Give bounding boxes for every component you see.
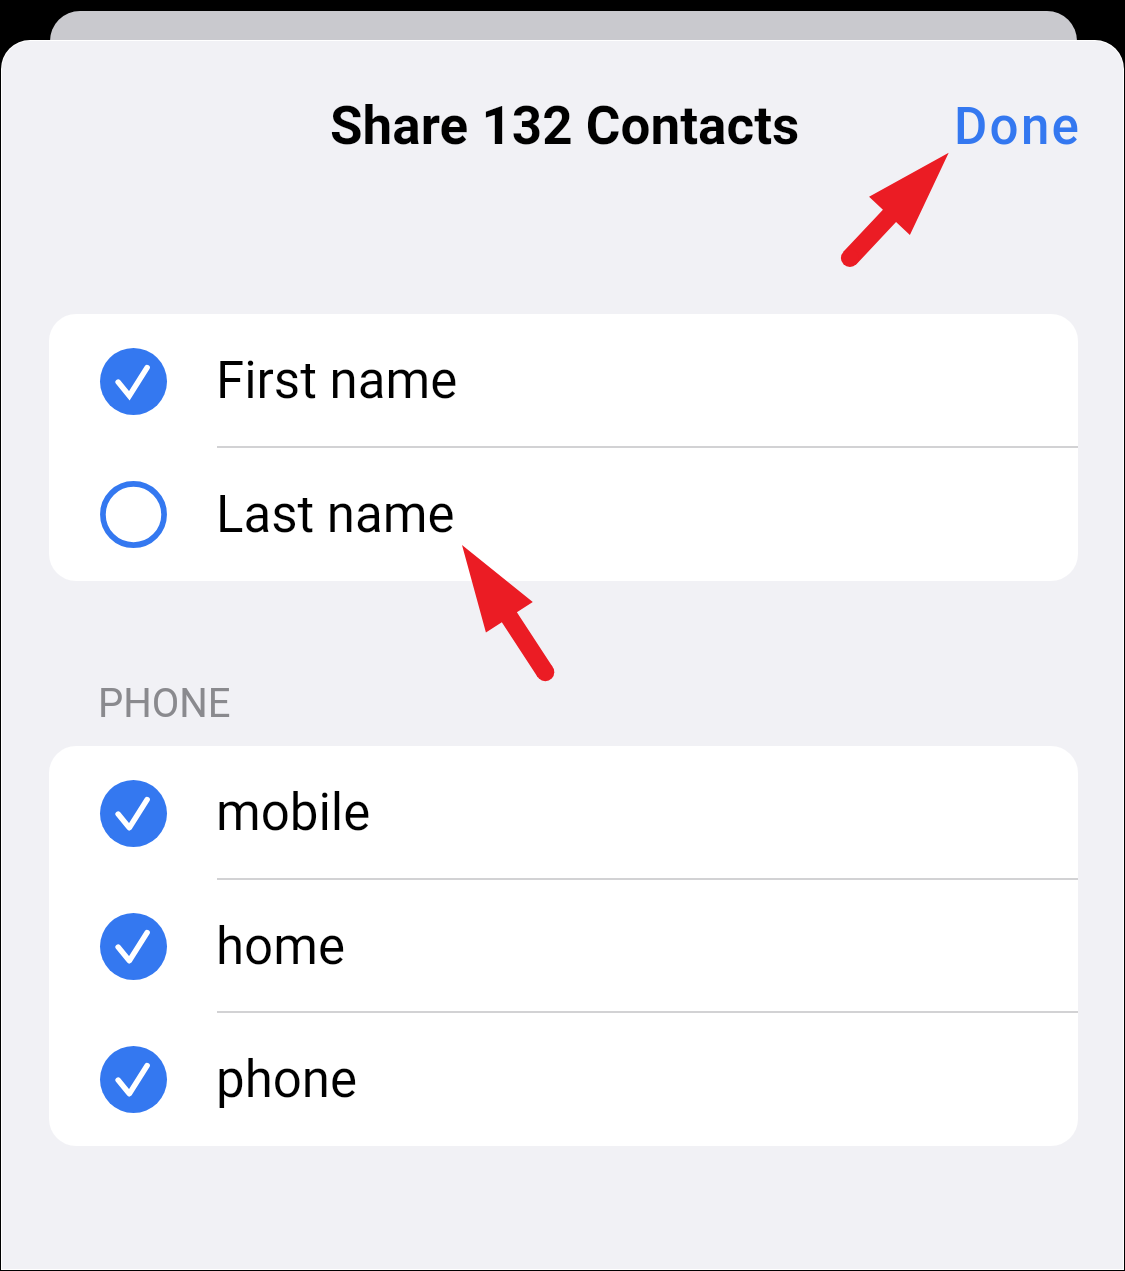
button[interactable]: phone selected [49,1013,1078,1146]
staticText: home [216,917,345,977]
other: phone selected [100,1046,167,1113]
other: Last name not selected [100,481,167,548]
button[interactable]: Last name not selected [49,448,1078,581]
button[interactable]: mobile selected [49,746,1078,880]
other: mobile selected [100,780,167,847]
staticText: Done [954,97,1082,157]
button[interactable]: home selected [49,880,1078,1013]
other: First name selected [100,348,167,415]
other: home selected [100,913,167,980]
button[interactable]: Done [914,85,1123,173]
staticText: Share 132 Contacts [330,95,800,157]
button[interactable]: First name selected [49,314,1078,448]
staticText: mobile [216,783,371,843]
staticText: Last name [216,485,455,545]
staticText: PHONE [98,680,231,727]
staticText: phone [216,1050,358,1110]
staticText: First name [216,351,458,411]
